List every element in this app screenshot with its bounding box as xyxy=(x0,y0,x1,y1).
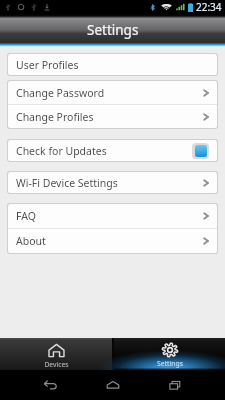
button[interactable]: Settings xyxy=(114,338,225,370)
button[interactable]: User Profiles xyxy=(8,54,217,75)
staticText: Devices xyxy=(44,360,69,369)
staticText: About xyxy=(16,234,46,248)
staticText: FAQ xyxy=(16,209,36,223)
button[interactable]: Check for Updates checkbox xyxy=(192,143,209,159)
button[interactable]: Change Password xyxy=(8,81,217,104)
staticText: Settings xyxy=(157,359,183,368)
staticText: User Profiles xyxy=(16,58,79,72)
staticText: Check for Updates xyxy=(16,144,107,158)
button[interactable]: Devices xyxy=(0,338,112,370)
button[interactable]: Check for Updates xyxy=(8,140,217,161)
button[interactable]: FAQ xyxy=(8,204,217,228)
staticText: Change Password xyxy=(16,86,105,100)
button[interactable]: Back xyxy=(37,372,63,398)
other: Settings xyxy=(161,342,179,358)
button[interactable]: Wi-Fi Device Settings xyxy=(8,172,217,193)
button[interactable]: Change Profiles xyxy=(8,105,217,128)
staticText: Change Profiles xyxy=(16,110,94,124)
button[interactable]: Recent apps xyxy=(162,372,188,398)
staticText: 22:34 xyxy=(196,0,222,14)
button[interactable]: Home xyxy=(100,372,126,398)
staticText: Wi-Fi Device Settings xyxy=(16,176,118,190)
other: Devices xyxy=(48,342,65,359)
staticText: Settings xyxy=(87,21,139,39)
button[interactable]: About xyxy=(8,229,217,253)
